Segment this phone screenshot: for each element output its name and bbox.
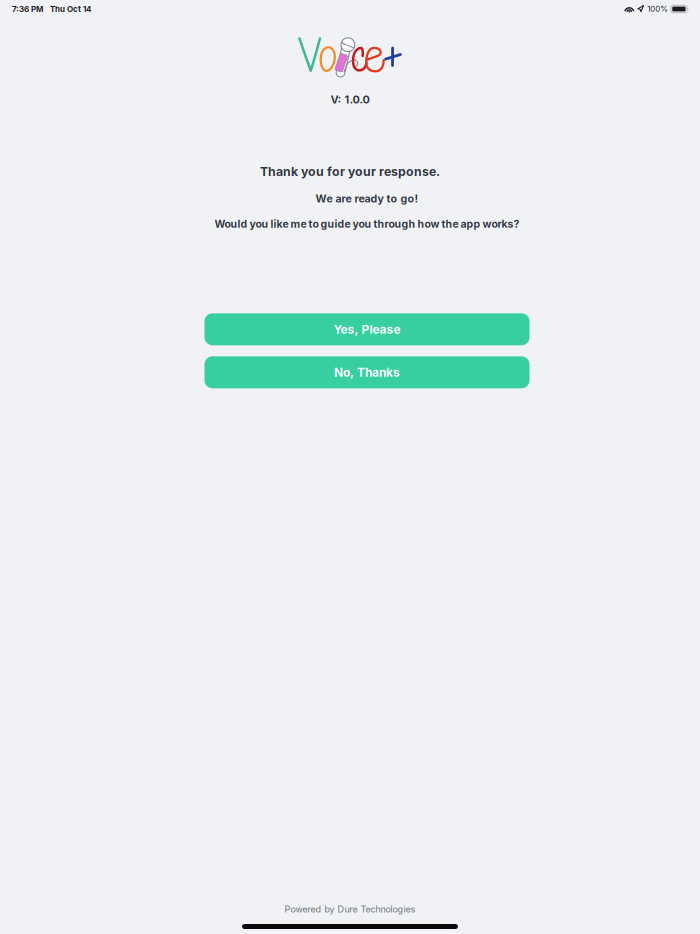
staticText: Thu Oct 14 (50, 4, 91, 14)
button[interactable]: Yes, Please (204, 313, 529, 345)
staticText: Powered by Dure Technologies (284, 904, 415, 915)
staticText: 100% (647, 4, 668, 14)
staticText: V: 1.0.0 (330, 93, 369, 106)
staticText: No, Thanks (334, 365, 400, 380)
staticText: Thank you for your response. (260, 164, 440, 179)
staticText: 7:36 PM (12, 4, 43, 14)
button[interactable]: No, Thanks (204, 356, 529, 388)
staticText: We are ready to go! (315, 192, 418, 205)
staticText: Would you like me to guide you through h… (214, 217, 519, 230)
staticText: Yes, Please (333, 322, 400, 337)
